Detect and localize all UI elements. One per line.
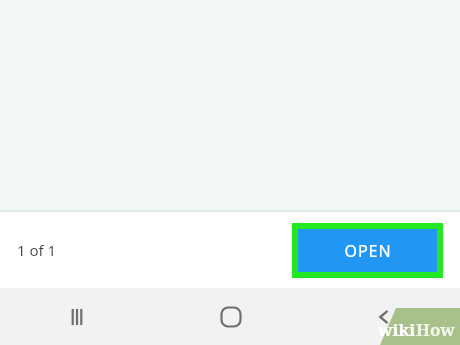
staticText: wiki bbox=[378, 318, 416, 341]
button[interactable]: Recent apps bbox=[0, 288, 154, 345]
button[interactable]: Home bbox=[154, 288, 307, 345]
button[interactable]: Back bbox=[307, 288, 460, 345]
staticText: How bbox=[416, 318, 455, 341]
staticText: OPEN bbox=[344, 240, 392, 262]
button[interactable]: OPEN bbox=[298, 229, 437, 272]
staticText: 1 of 1 bbox=[17, 240, 57, 260]
